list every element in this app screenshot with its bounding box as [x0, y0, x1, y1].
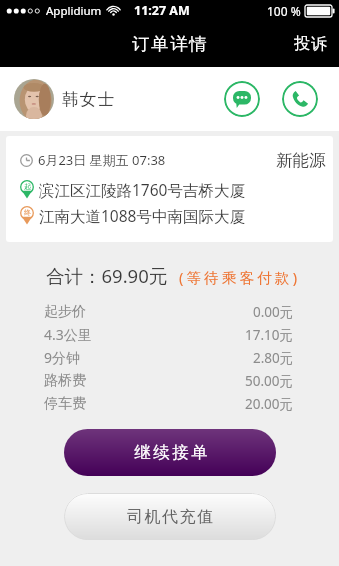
staticText: 20.00元 [245, 395, 294, 413]
staticText: 合计：69.90元 [46, 263, 168, 288]
staticText: 终 [24, 208, 31, 217]
staticText: 订单详情 [132, 33, 209, 55]
staticText: 继续接单 [133, 442, 209, 463]
staticText: 0.00元 [253, 303, 294, 321]
staticText: Applidium [46, 3, 102, 19]
staticText: 路桥费 [44, 372, 86, 390]
staticText: 新能源 [276, 150, 326, 170]
staticText: 50.00元 [245, 372, 294, 390]
staticText: 起 [24, 182, 31, 191]
staticText: 江南大道1088号中南国际大厦 [39, 205, 245, 226]
button[interactable]: 司机代充值 [64, 493, 276, 540]
staticText: 6月23日 星期五 07:38 [38, 151, 166, 169]
staticText: 17.10元 [245, 326, 294, 344]
staticText: (等待乘客付款) [179, 267, 301, 287]
staticText: 滨江区江陵路1760号吉桥大厦 [39, 179, 245, 200]
staticText: 2.80元 [253, 349, 294, 367]
staticText: 100 % [267, 3, 301, 19]
button[interactable]: Message [224, 81, 260, 117]
staticText: 9分钟 [44, 348, 81, 367]
staticText: 司机代充值 [127, 507, 215, 527]
staticText: 投诉 [294, 34, 328, 54]
button[interactable]: 继续接单 [64, 429, 276, 476]
staticText: 停车费 [44, 395, 86, 413]
button[interactable]: Call [282, 81, 318, 117]
staticText: 4.3公里 [44, 325, 92, 344]
button[interactable]: 投诉 [280, 23, 339, 65]
staticText: 韩女士 [62, 89, 116, 110]
staticText: 11:27 AM [134, 2, 190, 19]
staticText: 起步价 [44, 303, 86, 321]
